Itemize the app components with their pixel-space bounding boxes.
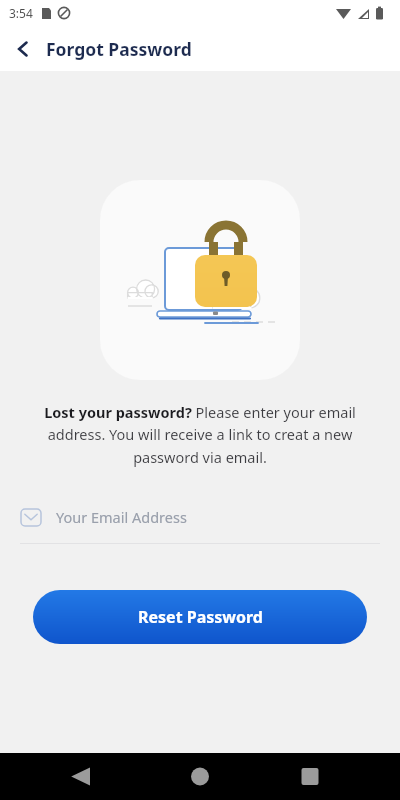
- button[interactable]: Reset Password: [33, 590, 367, 644]
- staticText: Reset Password: [138, 606, 263, 628]
- staticText: Your Email Address: [56, 507, 187, 527]
- staticText: Forgot Password: [46, 37, 192, 61]
- staticText: Lost your password? Please enter your em…: [22, 402, 378, 467]
- staticText: 3:54: [9, 5, 33, 21]
- button[interactable]: Back: [0, 26, 46, 71]
- button[interactable]: Your Email Address: [20, 500, 380, 544]
